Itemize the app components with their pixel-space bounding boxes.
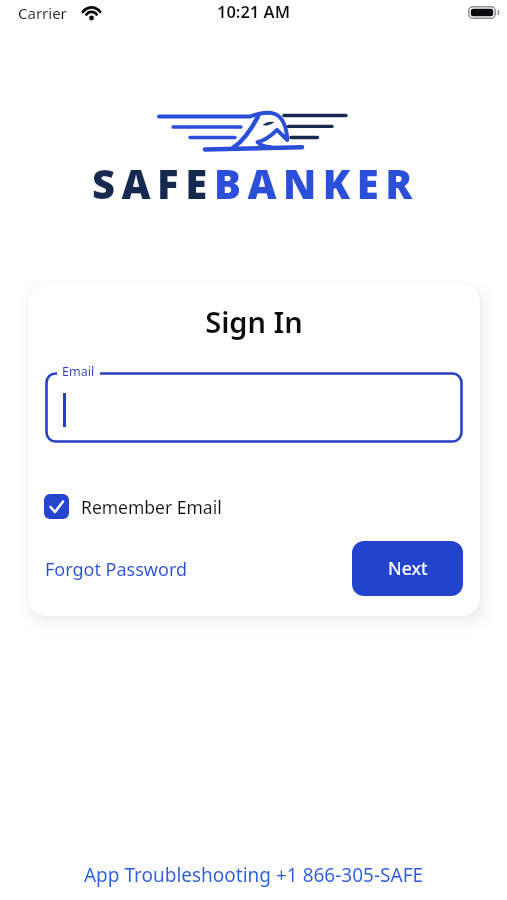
button[interactable]: Forgot Password <box>45 557 188 582</box>
staticText: Email <box>62 363 95 380</box>
staticText: 10:21 AM <box>0 0 507 22</box>
button[interactable]: Remember Email <box>44 494 222 519</box>
staticText: Remember Email <box>81 495 222 519</box>
button[interactable]: Email <box>45 372 463 443</box>
button[interactable]: Next <box>352 541 463 596</box>
button[interactable]: App Troubleshooting +1 866-305-SAFE <box>0 862 507 888</box>
staticText: Sign In <box>28 302 480 341</box>
staticText: BANKER <box>214 156 419 210</box>
staticText: Carrier <box>18 3 67 23</box>
staticText: Next <box>388 556 428 581</box>
staticText: SAFE <box>92 156 214 210</box>
